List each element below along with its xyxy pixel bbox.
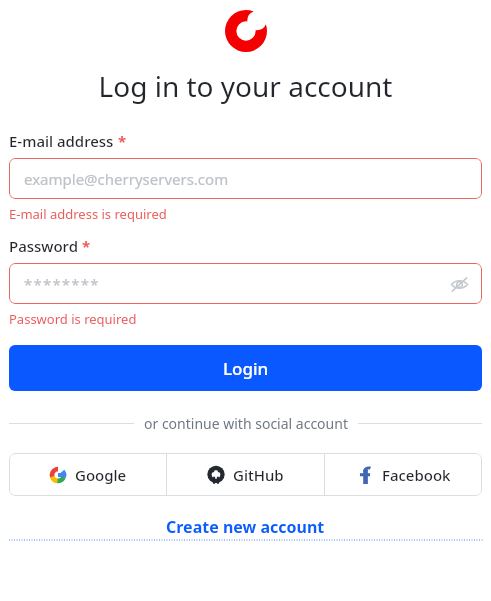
- button[interactable]: Facebook: [325, 453, 482, 496]
- staticText: *: [82, 236, 91, 256]
- button[interactable]: example@cherryservers.com: [9, 158, 482, 199]
- button[interactable]: ********: [9, 263, 482, 304]
- staticText: Facebook: [382, 465, 451, 485]
- staticText: ********: [24, 274, 100, 294]
- staticText: Login: [223, 357, 269, 380]
- button[interactable]: Show password: [448, 273, 470, 295]
- button[interactable]: Login: [9, 345, 482, 391]
- staticText: Google: [75, 465, 127, 485]
- staticText: example@cherryservers.com: [24, 169, 229, 189]
- staticText: Log in to your account: [0, 67, 491, 105]
- staticText: Password: [9, 236, 78, 256]
- staticText: E-mail address: [9, 131, 114, 151]
- staticText: E-mail address is required: [9, 205, 167, 223]
- button[interactable]: Create new account: [9, 516, 482, 541]
- button[interactable]: GitHub: [167, 453, 324, 496]
- button[interactable]: Google: [9, 453, 166, 496]
- staticText: Password is required: [9, 310, 137, 328]
- staticText: Create new account: [166, 516, 325, 538]
- staticText: GitHub: [233, 465, 284, 485]
- staticText: or continue with social account: [144, 414, 348, 433]
- staticText: *: [118, 131, 127, 151]
